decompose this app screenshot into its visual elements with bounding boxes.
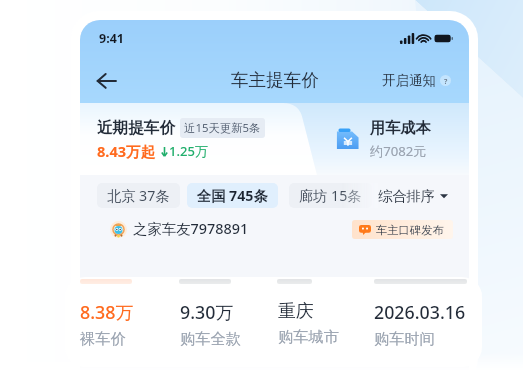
staticText: 重庆	[278, 300, 314, 322]
staticText: 用车成本	[370, 118, 431, 137]
button[interactable]: 之家车友7978891	[110, 219, 453, 239]
staticText: 车主提车价	[231, 69, 319, 91]
staticText: 8.43万起	[97, 141, 156, 161]
staticText: 9.30万	[180, 300, 234, 324]
staticText: 购车全款	[180, 329, 241, 348]
staticText: 近15天更新5条	[184, 120, 261, 136]
button[interactable]: 全国 745条	[187, 183, 278, 208]
button[interactable]: 开启通知	[380, 68, 453, 93]
staticText: 8.38万	[80, 300, 134, 324]
staticText: 约7082元	[370, 142, 427, 160]
staticText: 综合排序	[378, 187, 435, 204]
button[interactable]: 用车成本	[336, 118, 431, 160]
staticText: 购车城市	[278, 327, 339, 346]
staticText: ?	[444, 76, 448, 86]
staticText: 全国 745条	[197, 186, 268, 205]
staticText: 裸车价	[80, 329, 126, 348]
staticText: 2026.03.16	[374, 300, 466, 324]
button[interactable]: 综合排序	[378, 183, 448, 208]
staticText: 9:41	[99, 30, 124, 47]
staticText: 车主口碑发布	[376, 223, 444, 237]
staticText: 购车时间	[374, 329, 435, 348]
staticText: 廊坊 15条	[299, 186, 362, 205]
staticText: 之家车友7978891	[133, 219, 249, 239]
staticText: 近期提车价	[97, 118, 175, 138]
button[interactable]: 北京 37条	[97, 183, 180, 208]
staticText: 开启通知	[382, 72, 436, 89]
staticText: 北京 37条	[107, 186, 170, 205]
button[interactable]: 廊坊 15条	[289, 183, 372, 208]
staticText: 1.25万	[169, 142, 208, 160]
button[interactable]: Back	[89, 63, 123, 97]
